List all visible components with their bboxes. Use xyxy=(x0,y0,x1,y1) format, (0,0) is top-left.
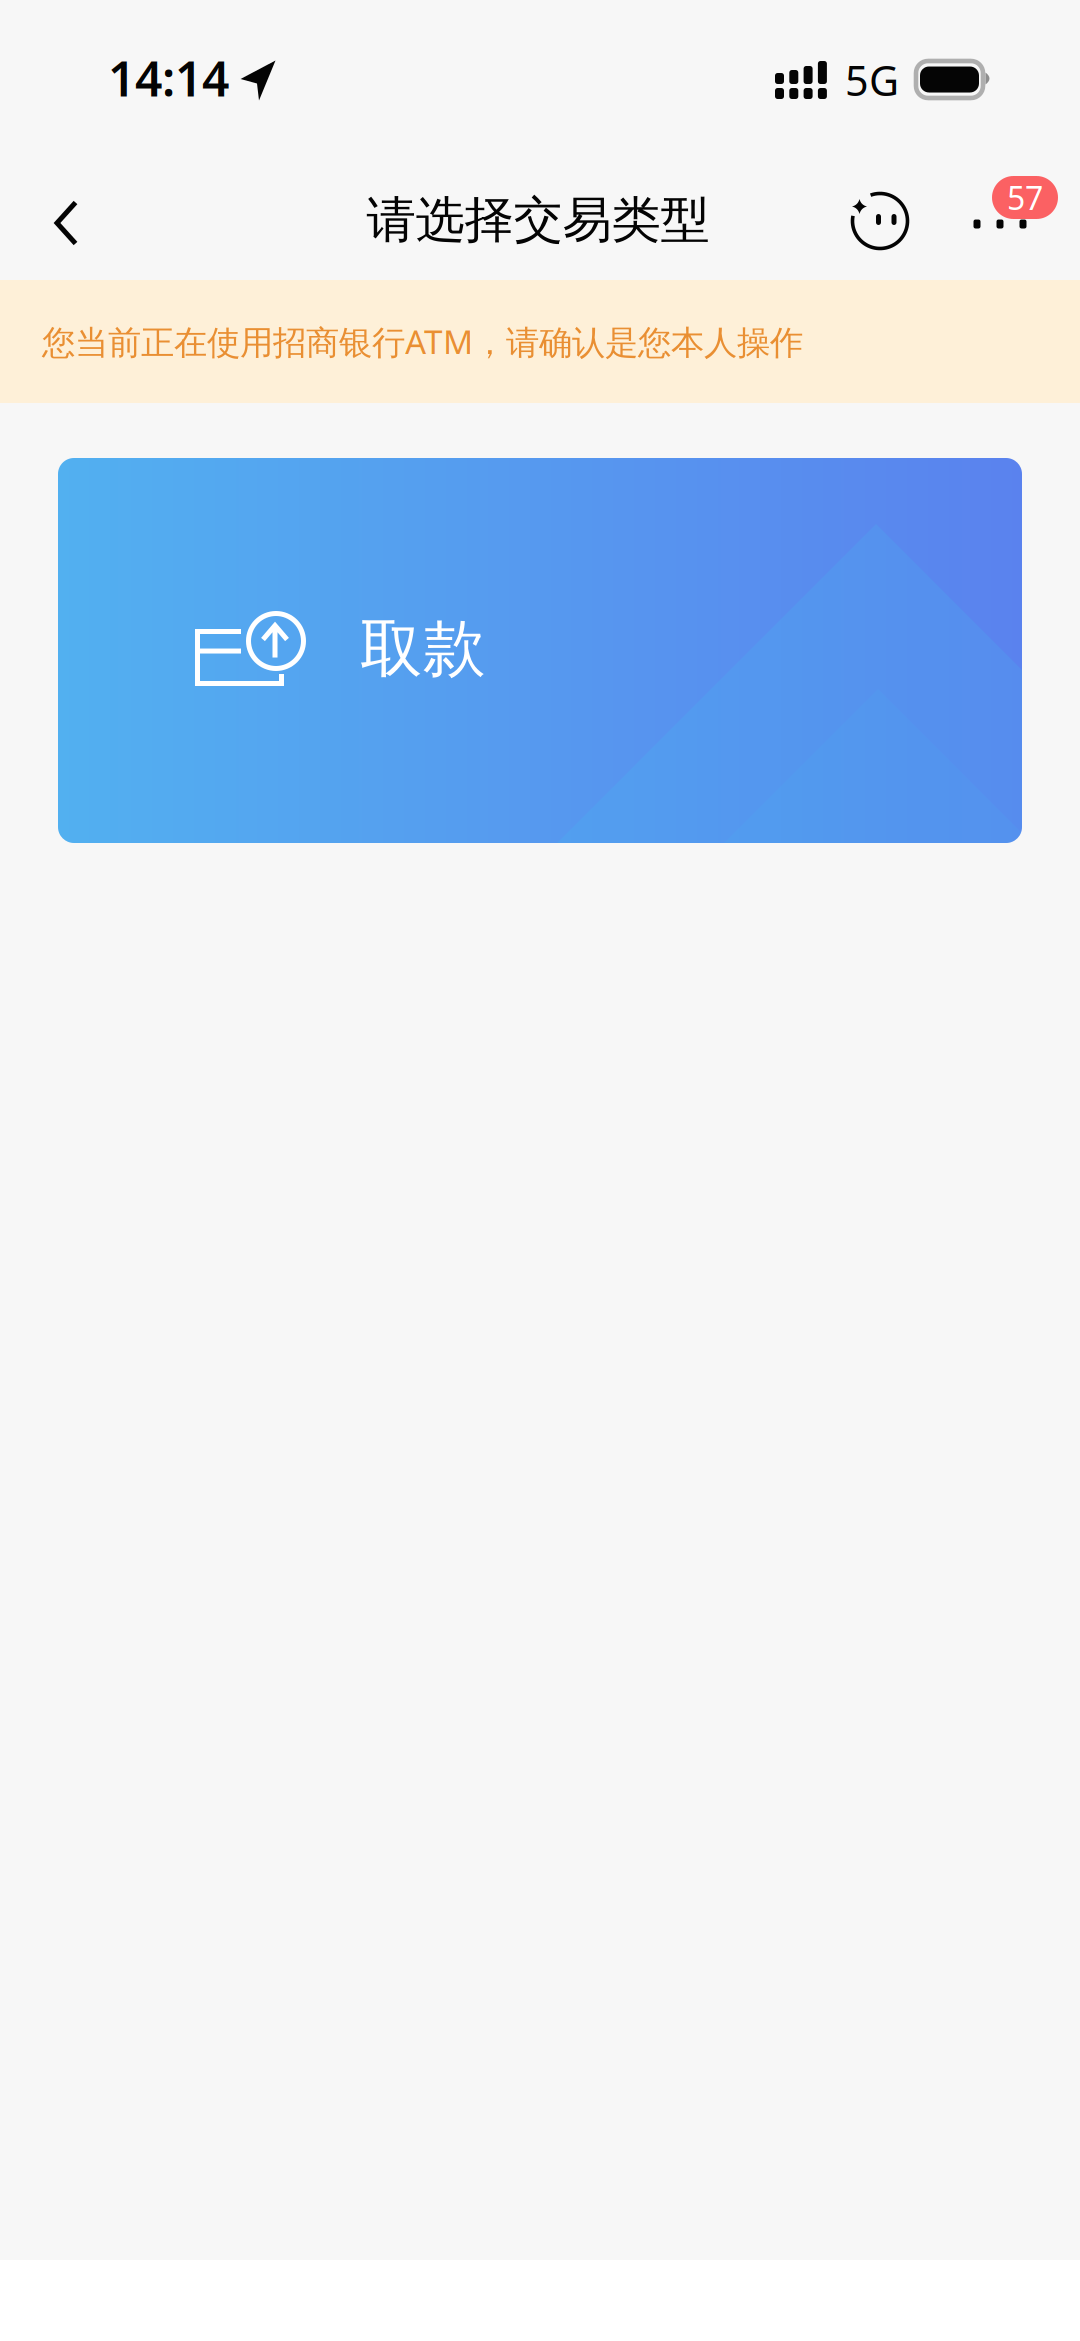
staticText: 取款 xyxy=(360,610,486,687)
button[interactable]: Back xyxy=(11,168,121,278)
button[interactable]: More options xyxy=(945,169,1055,279)
button[interactable]: 取款 xyxy=(58,458,1022,843)
staticText: 请选择交易类型 xyxy=(366,190,709,250)
staticText: 5G xyxy=(845,53,899,107)
staticText: 57 xyxy=(1007,176,1043,219)
button[interactable]: Assistant xyxy=(825,166,935,276)
staticText: 14:14 xyxy=(108,46,229,110)
staticText: 您当前正在使用招商银行ATM，请确认是您本人操作 xyxy=(42,319,803,364)
